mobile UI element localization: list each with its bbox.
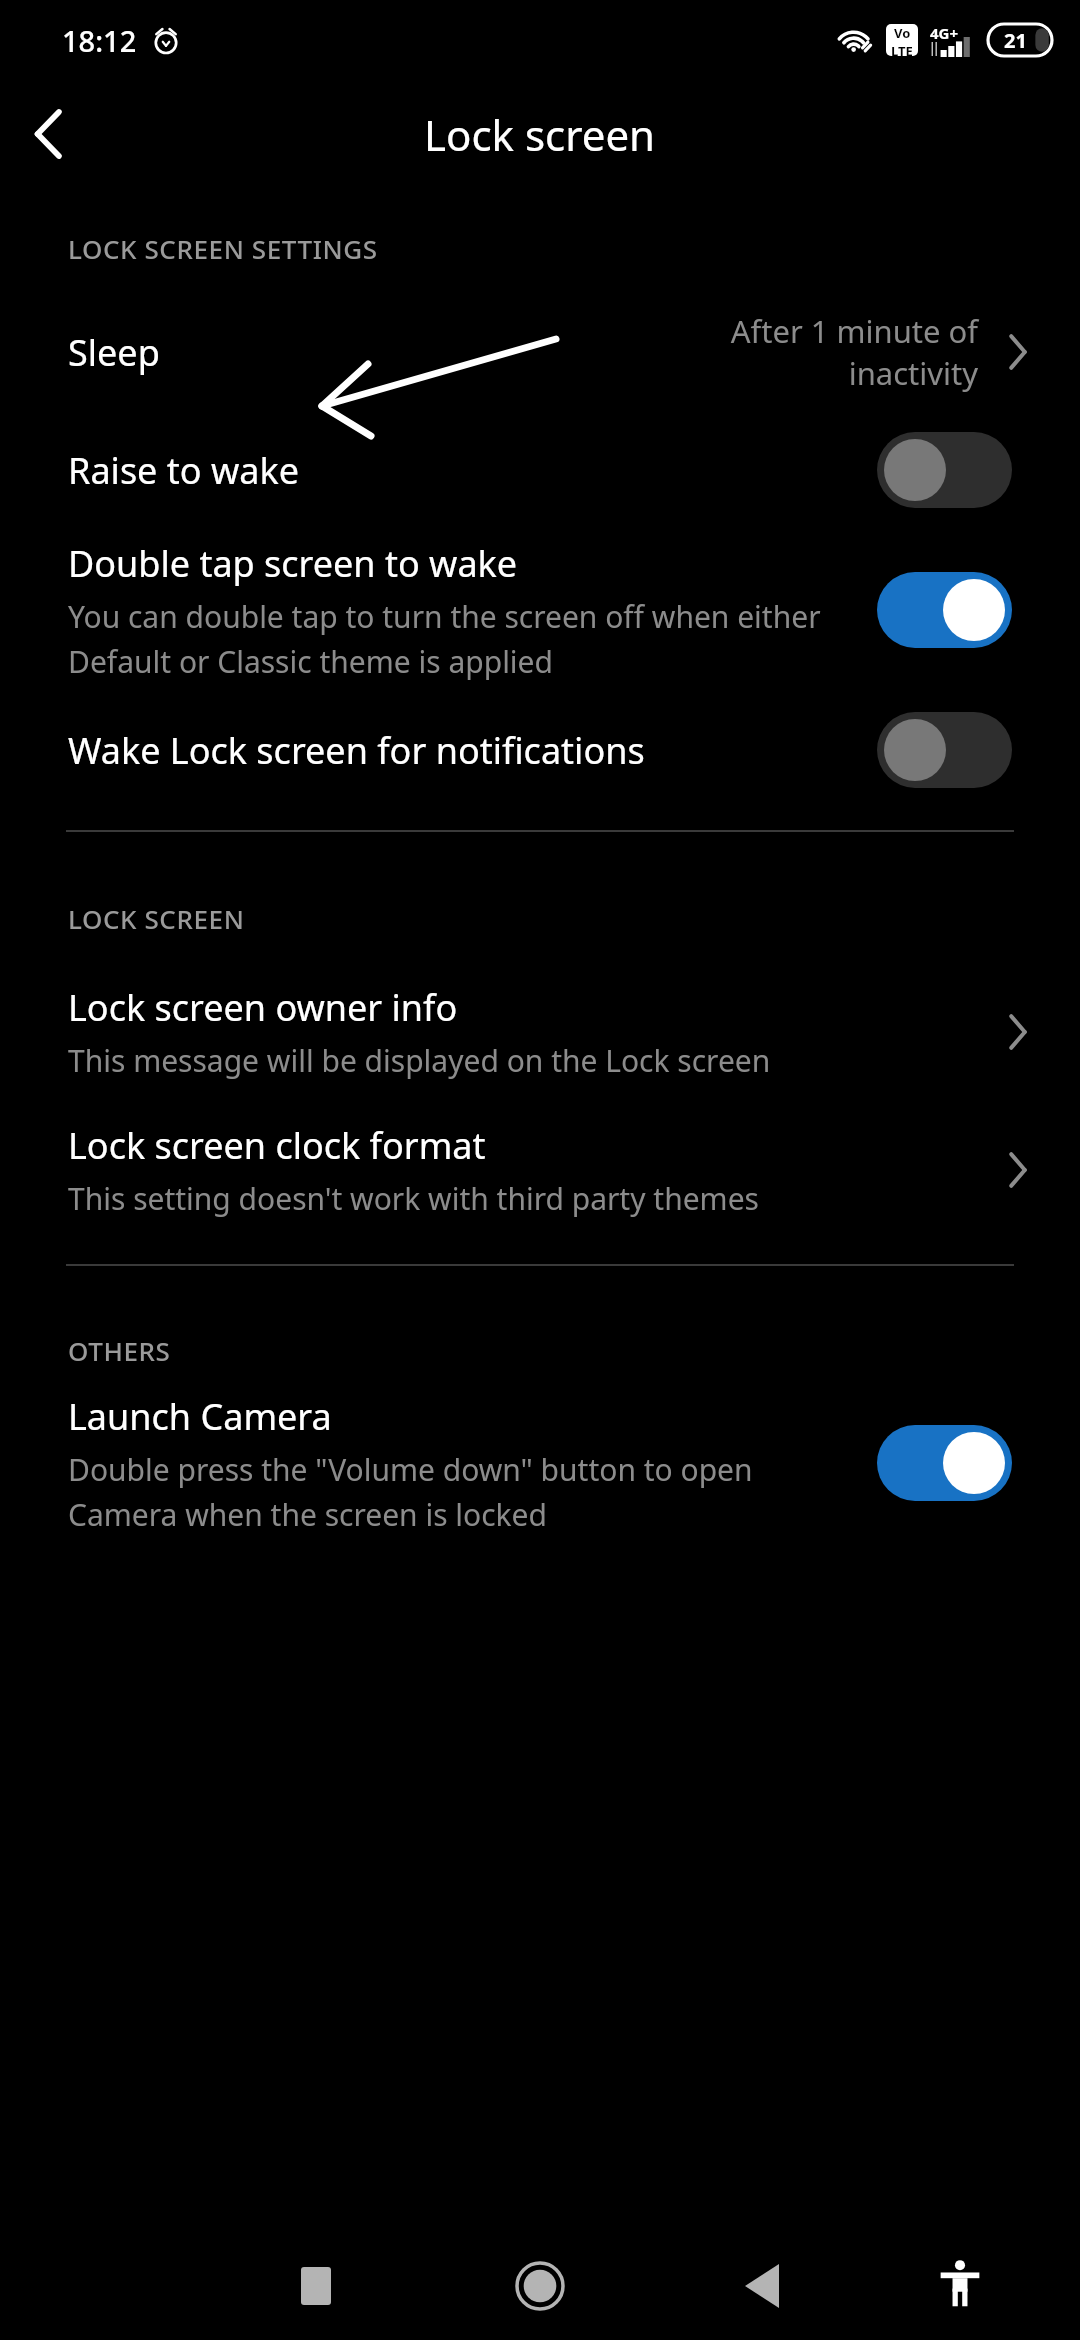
staticText: LOCK SCREEN SETTINGS: [68, 231, 378, 266]
button[interactable]: Off: [877, 432, 1012, 508]
button[interactable]: Lock screen owner info: [0, 956, 1080, 1108]
button[interactable]: On: [877, 1425, 1012, 1501]
staticText: Raise to wake: [68, 446, 299, 495]
staticText: Wake Lock screen for notifications: [68, 726, 645, 775]
staticText: This setting doesn't work with third par…: [68, 1178, 759, 1219]
staticText: Launch Camera: [68, 1392, 332, 1441]
button[interactable]: On: [877, 572, 1012, 648]
button[interactable]: Recent apps: [268, 2238, 364, 2334]
button[interactable]: Launch Camera: [0, 1388, 1080, 1538]
button[interactable]: Double tap screen to wake: [0, 522, 1080, 698]
staticText: Lock screen clock format: [68, 1121, 486, 1170]
staticText: After 1 minute of inactivity: [678, 310, 978, 394]
staticText: Double tap screen to wake: [68, 539, 518, 588]
staticText: This message will be displayed on the Lo…: [68, 1040, 771, 1081]
button[interactable]: Wake Lock screen for notifications: [0, 698, 1080, 802]
button[interactable]: Accessibility: [912, 2238, 1008, 2334]
staticText: 4G+: [930, 23, 959, 43]
button[interactable]: Back: [0, 86, 96, 182]
button[interactable]: Lock screen clock format: [0, 1108, 1080, 1232]
button[interactable]: Back: [714, 2238, 810, 2334]
button[interactable]: Sleep: [0, 286, 1080, 418]
staticText: 21: [1004, 27, 1027, 54]
staticText: LOCK SCREEN: [68, 901, 245, 936]
staticText: Sleep: [68, 328, 160, 377]
staticText: LTE: [891, 42, 913, 56]
staticText: Vo: [894, 24, 911, 42]
staticText: You can double tap to turn the screen of…: [68, 596, 853, 681]
button[interactable]: Off: [877, 712, 1012, 788]
button[interactable]: Home: [492, 2238, 588, 2334]
staticText: 18:12: [62, 21, 137, 60]
staticText: OTHERS: [68, 1333, 171, 1368]
button[interactable]: Raise to wake: [0, 418, 1080, 522]
staticText: Double press the "Volume down" button to…: [68, 1449, 853, 1534]
staticText: Lock screen: [424, 106, 656, 163]
staticText: Lock screen owner info: [68, 983, 458, 1032]
